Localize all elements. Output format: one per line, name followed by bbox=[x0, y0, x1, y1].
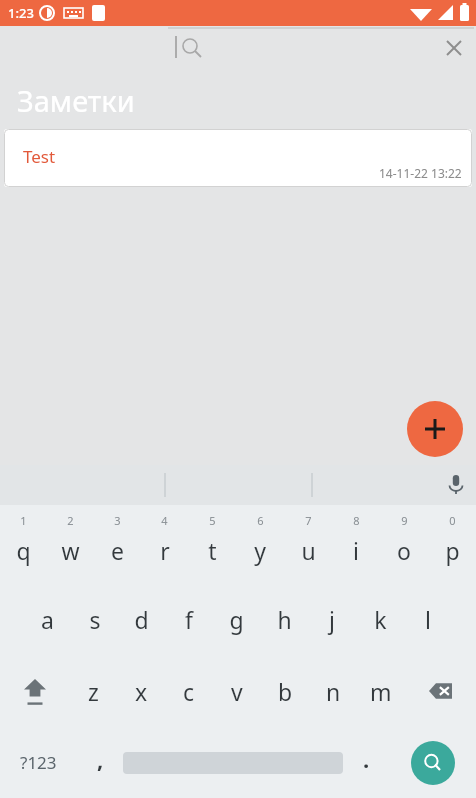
button[interactable]: z bbox=[70, 655, 117, 727]
button[interactable]: k bbox=[356, 583, 404, 655]
staticText: l bbox=[425, 604, 431, 635]
staticText: r bbox=[160, 535, 170, 566]
button[interactable]: Close search bbox=[432, 26, 476, 70]
staticText: g bbox=[229, 604, 244, 635]
button[interactable]: . bbox=[343, 727, 389, 798]
staticText: 4 bbox=[161, 513, 168, 528]
staticText: v bbox=[231, 676, 243, 707]
button[interactable]: m bbox=[357, 655, 405, 727]
button[interactable]: 7 bbox=[284, 505, 332, 583]
button[interactable]: ?123 bbox=[0, 727, 77, 798]
button[interactable]: s bbox=[71, 583, 118, 655]
staticText: d bbox=[134, 604, 149, 635]
staticText: w bbox=[61, 535, 80, 566]
button[interactable]: Search bbox=[389, 727, 476, 798]
button[interactable]: j bbox=[308, 583, 356, 655]
staticText: i bbox=[353, 535, 359, 566]
staticText: , bbox=[97, 744, 104, 774]
staticText: Test bbox=[23, 145, 56, 168]
staticText: s bbox=[89, 604, 101, 635]
button[interactable]: 3 bbox=[94, 505, 141, 583]
button[interactable]: c bbox=[165, 655, 213, 727]
button[interactable]: Voice input bbox=[436, 465, 476, 505]
staticText: y bbox=[254, 535, 266, 566]
staticText: x bbox=[135, 676, 148, 707]
staticText: c bbox=[183, 676, 195, 707]
button[interactable]: h bbox=[260, 583, 308, 655]
button[interactable]: 1 bbox=[0, 505, 47, 583]
staticText: 3 bbox=[114, 513, 121, 528]
button[interactable]: n bbox=[309, 655, 357, 727]
button[interactable]: v bbox=[213, 655, 261, 727]
staticText: k bbox=[374, 604, 387, 635]
staticText: 9 bbox=[401, 513, 408, 528]
staticText: . bbox=[363, 744, 370, 774]
button[interactable]: Add note bbox=[407, 401, 463, 457]
staticText: j bbox=[329, 604, 335, 635]
staticText: 7 bbox=[305, 513, 312, 528]
staticText: h bbox=[277, 604, 292, 635]
staticText: 0 bbox=[449, 513, 456, 528]
staticText: q bbox=[16, 535, 31, 566]
staticText: 8 bbox=[353, 513, 360, 528]
staticText: 5 bbox=[209, 513, 216, 528]
button[interactable]: 5 bbox=[188, 505, 236, 583]
staticText: t bbox=[208, 535, 217, 566]
button[interactable]: Backspace bbox=[405, 655, 476, 727]
staticText: u bbox=[301, 535, 316, 566]
staticText: f bbox=[185, 604, 193, 635]
staticText: b bbox=[278, 676, 293, 707]
staticText: z bbox=[88, 676, 99, 707]
button[interactable]: 9 bbox=[380, 505, 428, 583]
button[interactable]: Shift bbox=[0, 655, 70, 727]
button[interactable]: 8 bbox=[332, 505, 380, 583]
button[interactable]: 2 bbox=[47, 505, 94, 583]
staticText: e bbox=[111, 535, 124, 566]
staticText: ?123 bbox=[20, 751, 57, 774]
staticText: o bbox=[397, 535, 411, 566]
button[interactable]: g bbox=[212, 583, 260, 655]
button[interactable]: a bbox=[24, 583, 71, 655]
staticText: p bbox=[445, 535, 460, 566]
staticText: n bbox=[326, 676, 341, 707]
button[interactable]: 4 bbox=[141, 505, 188, 583]
button[interactable]: f bbox=[165, 583, 212, 655]
staticText: Заметки bbox=[17, 81, 135, 120]
staticText: 6 bbox=[257, 513, 264, 528]
button[interactable]: l bbox=[404, 583, 452, 655]
button[interactable]: b bbox=[261, 655, 309, 727]
button[interactable]: Space bbox=[123, 727, 343, 798]
button[interactable]: , bbox=[77, 727, 123, 798]
button[interactable]: 0 bbox=[428, 505, 476, 583]
staticText: 2 bbox=[67, 513, 74, 528]
staticText: a bbox=[41, 604, 54, 635]
button[interactable]: d bbox=[118, 583, 165, 655]
staticText: 1 bbox=[20, 513, 27, 528]
staticText: 1:23 bbox=[8, 4, 34, 22]
button[interactable]: 6 bbox=[236, 505, 284, 583]
button[interactable]: x bbox=[117, 655, 165, 727]
staticText: 14-11-22 13:22 bbox=[379, 165, 462, 181]
staticText: m bbox=[370, 676, 392, 707]
button[interactable]: Test bbox=[4, 129, 472, 187]
